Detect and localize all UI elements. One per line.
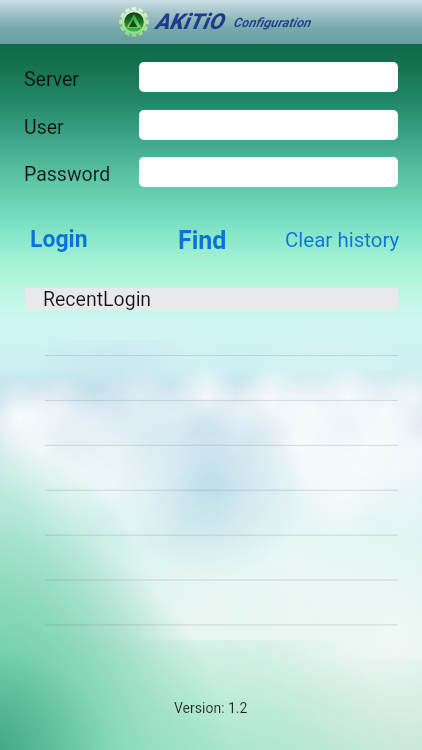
staticText: Configuration [233,15,311,30]
button[interactable]: Find [172,222,233,259]
staticText: Clear history [285,228,400,252]
staticText: Version: 1.2 [174,700,248,716]
staticText: Find [178,226,227,255]
staticText: RecentLogin [43,288,152,310]
other: AKiTiO logo [119,7,149,37]
staticText: Login [30,226,88,253]
button[interactable]: Login [24,222,94,257]
staticText: User [24,116,64,139]
button[interactable]: RecentLogin [25,288,398,310]
button[interactable] [139,62,398,92]
button[interactable] [139,157,398,187]
button[interactable]: Clear history [279,224,406,256]
staticText: Password [24,163,111,186]
staticText: AKiTiO [155,9,224,35]
staticText: Server [24,68,79,91]
button[interactable] [139,110,398,140]
